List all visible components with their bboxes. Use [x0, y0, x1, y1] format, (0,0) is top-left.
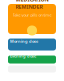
staticText: Morning dose: [10, 39, 38, 44]
staticText: Take your pills on time: [12, 12, 51, 17]
staticText: Evening dose: [10, 53, 36, 59]
staticText: MEDICATION REMINDER: [15, 0, 48, 10]
